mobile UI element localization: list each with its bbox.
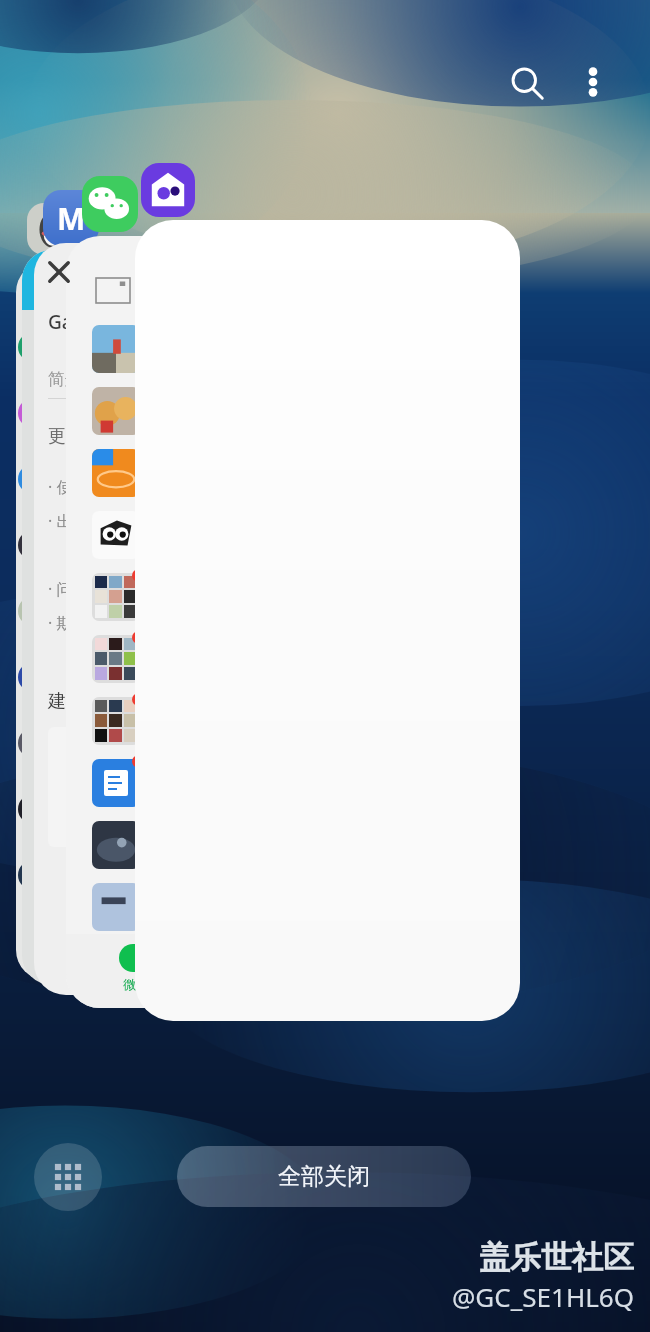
staticText: 盖乐世社区 — [479, 1238, 634, 1277]
button[interactable]: Search — [495, 51, 559, 115]
staticText: · 使 — [48, 476, 73, 498]
staticText: Gal — [48, 309, 78, 335]
staticText: 建议 — [48, 690, 84, 713]
staticText: 更详 — [48, 425, 84, 448]
button[interactable]: Close — [36, 249, 82, 295]
staticText: @GC_SE1HL6Q — [452, 1279, 634, 1314]
button[interactable]: Gal — [34, 243, 144, 995]
button[interactable] — [135, 220, 520, 1021]
staticText: 简这 — [48, 369, 82, 390]
staticText: · 期 — [48, 612, 73, 634]
button[interactable]: 全部关闭 — [177, 1146, 471, 1207]
staticText: · 出 — [48, 510, 73, 532]
button[interactable]: App drawer — [34, 1143, 102, 1211]
staticText: · 问 — [48, 578, 73, 600]
staticText: M — [57, 198, 86, 239]
button[interactable]: More options — [562, 51, 624, 113]
staticText: 微信 — [123, 976, 149, 992]
button[interactable]: 微信 — [66, 236, 206, 1008]
staticText: 全部关闭 — [278, 1162, 370, 1191]
